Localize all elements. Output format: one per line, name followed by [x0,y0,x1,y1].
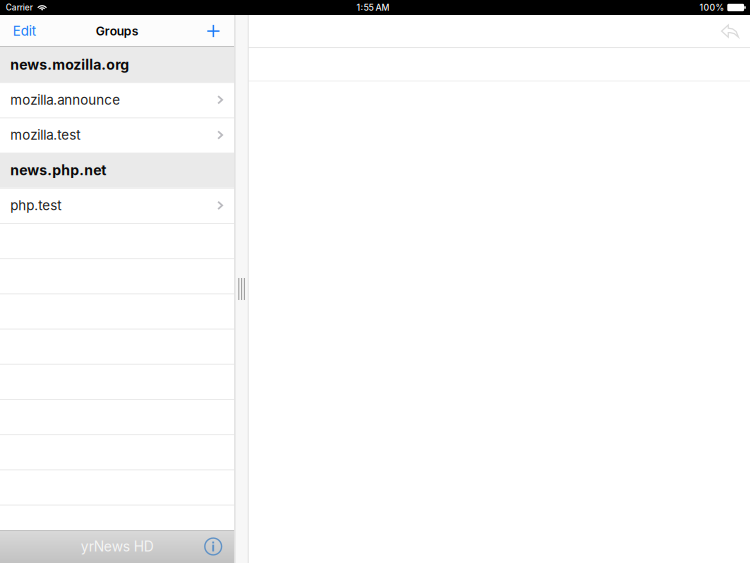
button[interactable]: mozilla.announce [0,82,234,117]
button[interactable]: Add group [186,15,234,47]
staticText: Edit [13,23,36,39]
button[interactable]: Edit [0,15,48,47]
staticText: php.test [10,197,61,213]
staticText: mozilla.test [10,127,80,143]
button[interactable]: Resize panes [234,15,249,563]
staticText: 100% [699,2,724,13]
staticText: yrNews HD [81,538,154,555]
staticText: 1:55 AM [357,2,390,13]
staticText: news.mozilla.org [10,56,129,73]
staticText: Groups [96,24,139,38]
button[interactable]: mozilla.test [0,117,234,153]
button[interactable]: Info [200,530,234,563]
button[interactable]: php.test [0,188,234,223]
staticText: mozilla.announce [10,92,120,108]
staticText: news.php.net [10,162,106,179]
button[interactable]: Reply [710,15,750,47]
staticText: Carrier [6,2,33,12]
